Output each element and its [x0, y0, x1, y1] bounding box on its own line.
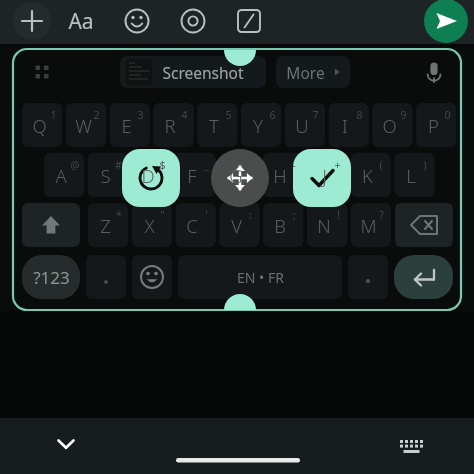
- staticText: J: [322, 163, 327, 188]
- staticText: B: [274, 213, 286, 238]
- staticText: (: [379, 158, 383, 172]
- staticText: !: [337, 208, 340, 222]
- staticText: 3: [137, 108, 144, 122]
- staticText: ?: [379, 208, 384, 222]
- staticText: #: [115, 158, 122, 172]
- staticText: K: [362, 163, 373, 188]
- button[interactable]: Mention: [173, 2, 213, 42]
- button[interactable]: More suggestions: [276, 56, 350, 88]
- staticText: V: [231, 213, 242, 238]
- staticText: 4: [181, 108, 188, 122]
- staticText: ;: [293, 208, 296, 222]
- button[interactable]: Send: [424, 0, 468, 44]
- button[interactable]: Emoji keyboard: [132, 255, 172, 299]
- button[interactable]: Screenshot suggestion: [120, 56, 266, 88]
- staticText: Z: [100, 213, 111, 238]
- staticText: S: [100, 163, 111, 188]
- button[interactable]: Move: [211, 149, 269, 207]
- button[interactable]: Shift: [22, 203, 80, 247]
- staticText: ': [205, 208, 208, 222]
- staticText: EN • FR: [237, 268, 284, 287]
- staticText: O: [382, 113, 397, 138]
- button[interactable]: Switch keyboard: [388, 424, 432, 464]
- staticText: A: [55, 163, 67, 188]
- staticText: I: [342, 113, 348, 138]
- staticText: 7: [312, 108, 319, 122]
- staticText: :: [249, 208, 252, 222]
- button[interactable]: Backspace: [395, 203, 453, 247]
- button[interactable]: Text formatting: [62, 2, 102, 42]
- staticText: 9: [400, 108, 407, 122]
- staticText: X: [144, 213, 155, 238]
- button[interactable]: Symbols: [22, 255, 80, 299]
- staticText: ): [423, 158, 427, 172]
- staticText: F: [187, 163, 197, 188]
- staticText: ?123: [33, 266, 70, 289]
- staticText: $: [159, 158, 166, 172]
- staticText: 8: [356, 108, 363, 122]
- button[interactable]: Slash command: [229, 2, 269, 42]
- staticText: P: [428, 113, 439, 138]
- staticText: W: [75, 113, 92, 138]
- staticText: L: [406, 163, 416, 188]
- button[interactable]: Confirm: [293, 149, 351, 207]
- staticText: -: [292, 158, 296, 172]
- staticText: ": [160, 208, 165, 222]
- staticText: U: [295, 113, 309, 138]
- staticText: +: [334, 158, 341, 172]
- staticText: Q: [32, 113, 47, 138]
- staticText: Y: [253, 113, 263, 138]
- staticText: More: [286, 62, 325, 83]
- button[interactable]: Emoji: [117, 2, 157, 42]
- staticText: Screenshot: [162, 62, 244, 83]
- staticText: *: [116, 208, 122, 222]
- staticText: D: [141, 163, 155, 188]
- button[interactable]: Clipboard: [24, 56, 60, 88]
- staticText: H: [273, 163, 287, 188]
- staticText: 2: [93, 108, 100, 122]
- staticText: _: [204, 158, 209, 172]
- staticText: E: [121, 113, 132, 138]
- button[interactable]: Hide keyboard: [44, 424, 88, 464]
- staticText: 1: [50, 108, 57, 122]
- staticText: 6: [269, 108, 276, 122]
- staticText: N: [317, 213, 331, 238]
- staticText: 5: [225, 108, 232, 122]
- staticText: Aa: [68, 7, 94, 35]
- button[interactable]: Enter: [394, 255, 453, 299]
- button[interactable]: Voice input: [414, 54, 452, 90]
- staticText: 0: [444, 108, 451, 122]
- staticText: T: [209, 113, 219, 138]
- button[interactable]: Space: [178, 255, 342, 299]
- staticText: R: [164, 113, 176, 138]
- staticText: @: [70, 158, 80, 172]
- staticText: M: [360, 213, 377, 238]
- staticText: C: [186, 213, 198, 238]
- button[interactable]: Rotate: [122, 149, 180, 207]
- staticText: G: [229, 163, 243, 188]
- button[interactable]: Add attachment: [13, 2, 53, 42]
